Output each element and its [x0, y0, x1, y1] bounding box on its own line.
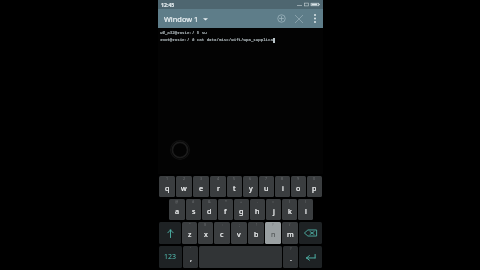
staticText: , [190, 253, 192, 263]
staticText: ? [272, 222, 274, 227]
staticText: ' [190, 246, 191, 251]
staticText: 12:45 [161, 1, 175, 8]
staticText: t [233, 183, 236, 193]
staticText: e [199, 183, 204, 193]
staticText: v [237, 229, 241, 239]
button[interactable]: Shift [159, 222, 181, 244]
staticText: j [273, 206, 275, 216]
button[interactable]: 2 [176, 176, 192, 197]
staticText: root@rosie:/ # cat data/misc/wifi/wpa_su… [160, 37, 273, 43]
staticText: ( [289, 199, 291, 204]
staticText: # [192, 199, 195, 204]
staticText: - [257, 199, 259, 204]
button[interactable]: New window [273, 10, 290, 27]
staticText: Window 1 [164, 14, 199, 24]
button[interactable]: : [214, 222, 230, 244]
staticText: x [204, 229, 208, 239]
staticText: 2 [183, 176, 186, 181]
staticText: k [288, 206, 292, 216]
staticText: y [249, 183, 253, 193]
staticText: 8 [281, 176, 284, 181]
staticText: f [224, 206, 227, 216]
staticText: 123 [164, 252, 177, 262]
button[interactable]: # [186, 199, 201, 220]
button[interactable]: ' [183, 246, 198, 268]
button[interactable]: ) [298, 199, 313, 220]
staticText: 6 [249, 176, 252, 181]
button[interactable]: & [202, 199, 217, 220]
staticText: l [305, 206, 307, 216]
staticText: n [271, 229, 276, 239]
button[interactable]: 4 [210, 176, 226, 197]
button[interactable]: Backspace [299, 222, 322, 244]
button[interactable]: 123 [159, 246, 182, 268]
staticText: p [312, 183, 317, 193]
staticText: ? [290, 246, 292, 251]
button[interactable]: 7 [259, 176, 274, 197]
staticText: & [208, 199, 211, 204]
staticText: = [272, 199, 275, 204]
staticText: + [240, 199, 243, 204]
staticText: o [296, 183, 301, 193]
staticText: r [217, 183, 220, 193]
staticText: b [254, 229, 259, 239]
button[interactable]: 0 [307, 176, 322, 197]
button[interactable]: Close window [290, 10, 307, 27]
button[interactable]: $ [198, 222, 213, 244]
staticText: h [255, 206, 260, 216]
button[interactable]: + [234, 199, 249, 220]
staticText: 5 [233, 176, 236, 181]
staticText: u0_a32@rosie:/ $ su [160, 30, 207, 36]
staticText: . [290, 253, 292, 263]
staticText: * [225, 199, 227, 204]
staticText: u [264, 183, 269, 193]
staticText: $ [204, 222, 207, 227]
staticText: ) [305, 199, 307, 204]
staticText: 9 [297, 176, 300, 181]
staticText: : [222, 222, 223, 227]
staticText: s [192, 206, 196, 216]
staticText: ; [239, 222, 240, 227]
staticText: 3 [200, 176, 203, 181]
button[interactable]: 8 [275, 176, 290, 197]
button[interactable]: = [266, 199, 281, 220]
button[interactable]: 6 [243, 176, 258, 197]
button[interactable]: @ [169, 199, 185, 220]
button[interactable]: 9 [291, 176, 306, 197]
button[interactable]: ; [231, 222, 247, 244]
staticText: @ [175, 199, 179, 204]
staticText: c [220, 229, 224, 239]
button[interactable]: Enter [299, 246, 322, 268]
staticText: g [239, 206, 244, 216]
staticText: w [181, 183, 187, 193]
button[interactable]: 1 [159, 176, 175, 197]
button[interactable]: 3 [193, 176, 209, 197]
staticText: a [175, 206, 180, 216]
button[interactable]: ( [282, 199, 297, 220]
staticText: d [207, 206, 212, 216]
staticText: / [289, 222, 291, 227]
staticText: 1 [166, 176, 169, 181]
staticText: " [189, 222, 191, 227]
button[interactable]: / [282, 222, 298, 244]
button[interactable]: Window 1 [163, 12, 209, 26]
button[interactable]: ? [265, 222, 281, 244]
staticText: m [287, 229, 294, 239]
button[interactable]: ! [248, 222, 264, 244]
button[interactable]: - [250, 199, 265, 220]
button[interactable]: More options [307, 11, 322, 26]
button[interactable]: " [182, 222, 197, 244]
staticText: q [165, 183, 170, 193]
button[interactable]: 5 [227, 176, 242, 197]
staticText: 0 [313, 176, 316, 181]
button[interactable]: * [218, 199, 233, 220]
staticText: ! [256, 222, 257, 227]
staticText: i [282, 183, 284, 193]
staticText: 7 [265, 176, 268, 181]
staticText: z [188, 229, 192, 239]
staticText: 4 [217, 176, 220, 181]
button[interactable]: ? [283, 246, 298, 268]
